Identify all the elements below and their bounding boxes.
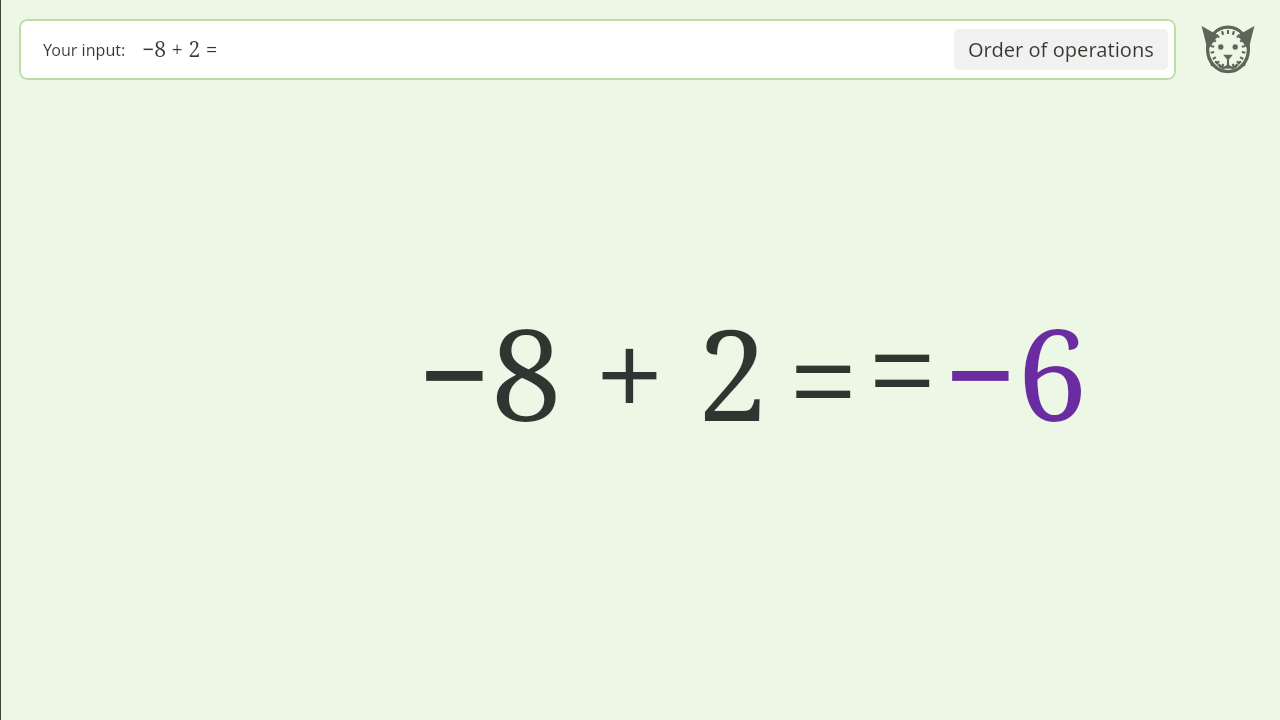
staticText: = (788, 292, 859, 432)
staticText: = (867, 281, 938, 421)
staticText: −8 + 2 (418, 286, 768, 426)
staticText: Order of operations (968, 36, 1154, 63)
button[interactable]: Your input: (19, 19, 1176, 80)
staticText: −6 (944, 286, 1088, 426)
button[interactable]: Profile avatar (1198, 20, 1258, 80)
button[interactable]: Order of operations (954, 29, 1168, 70)
staticText: −8 + 2 = (142, 35, 218, 64)
staticText: Your input: (43, 39, 126, 61)
